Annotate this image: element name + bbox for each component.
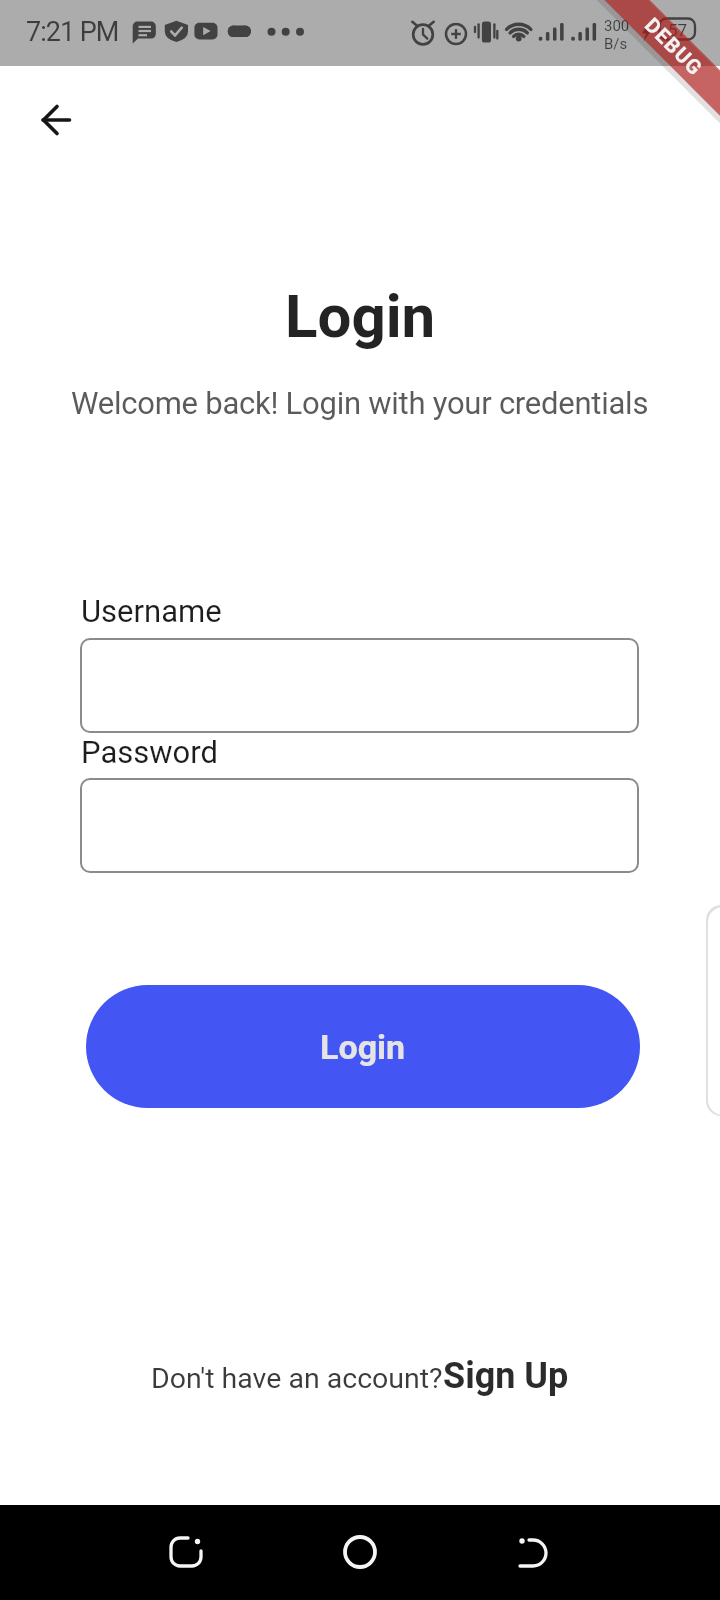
staticText: B/s <box>604 35 628 53</box>
staticText: Username <box>81 593 222 629</box>
staticText: DEBUG <box>640 13 708 81</box>
button[interactable]: Login <box>86 985 640 1108</box>
button[interactable] <box>324 1516 396 1588</box>
staticText: Password <box>81 734 218 770</box>
button[interactable] <box>497 1516 569 1588</box>
button[interactable] <box>80 638 639 733</box>
staticText: Login <box>320 1027 406 1067</box>
staticText: Login <box>285 281 436 351</box>
button[interactable]: Sign Up <box>443 1355 569 1397</box>
staticText: Welcome back! Login with your credential… <box>71 385 649 421</box>
button[interactable] <box>28 92 84 148</box>
staticText: 300 <box>604 17 630 35</box>
staticText: 57 <box>668 20 688 40</box>
button[interactable] <box>150 1516 222 1588</box>
staticText: Don't have an account? <box>151 1362 443 1395</box>
button[interactable] <box>80 778 639 873</box>
staticText: 7:21 PM <box>26 16 119 48</box>
